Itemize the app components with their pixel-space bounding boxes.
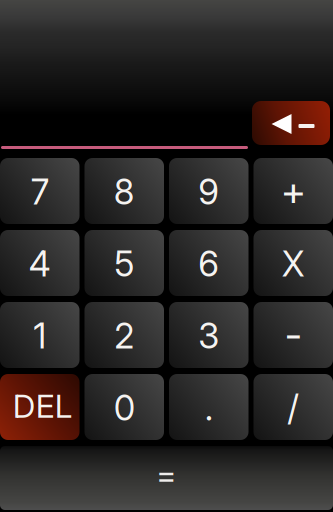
button[interactable]: + (253, 158, 333, 224)
button[interactable]: DEL (0, 374, 79, 440)
button[interactable]: Backspace (252, 101, 330, 145)
button[interactable]: 4 (0, 230, 79, 296)
staticText: 9 (198, 171, 219, 213)
button[interactable]: / (253, 374, 333, 440)
button[interactable]: 0 (84, 374, 164, 440)
staticText: 3 (198, 315, 219, 357)
staticText: 7 (31, 171, 49, 213)
button[interactable]: . (169, 374, 248, 440)
staticText: 1 (33, 315, 46, 357)
staticText: 8 (114, 171, 135, 213)
staticText: + (281, 167, 306, 215)
button[interactable]: - (253, 302, 333, 368)
staticText: DEL (13, 387, 73, 425)
staticText: . (205, 387, 213, 429)
button[interactable]: 7 (0, 158, 79, 224)
staticText: = (156, 455, 177, 493)
staticText: 5 (114, 243, 134, 285)
staticText: - (285, 310, 302, 358)
button[interactable]: 1 (0, 302, 79, 368)
button[interactable]: = (0, 446, 333, 512)
button[interactable]: 8 (84, 158, 164, 224)
button[interactable]: 6 (169, 230, 248, 296)
button[interactable]: 2 (84, 302, 164, 368)
staticText: 6 (198, 243, 219, 285)
button[interactable]: 5 (84, 230, 164, 296)
staticText: X (282, 243, 305, 285)
staticText: 4 (29, 243, 51, 285)
button[interactable]: 3 (169, 302, 248, 368)
staticText: 2 (114, 315, 134, 357)
button[interactable]: X (253, 230, 333, 296)
staticText: 0 (114, 387, 135, 429)
staticText: / (287, 387, 299, 429)
button[interactable]: 9 (169, 158, 248, 224)
